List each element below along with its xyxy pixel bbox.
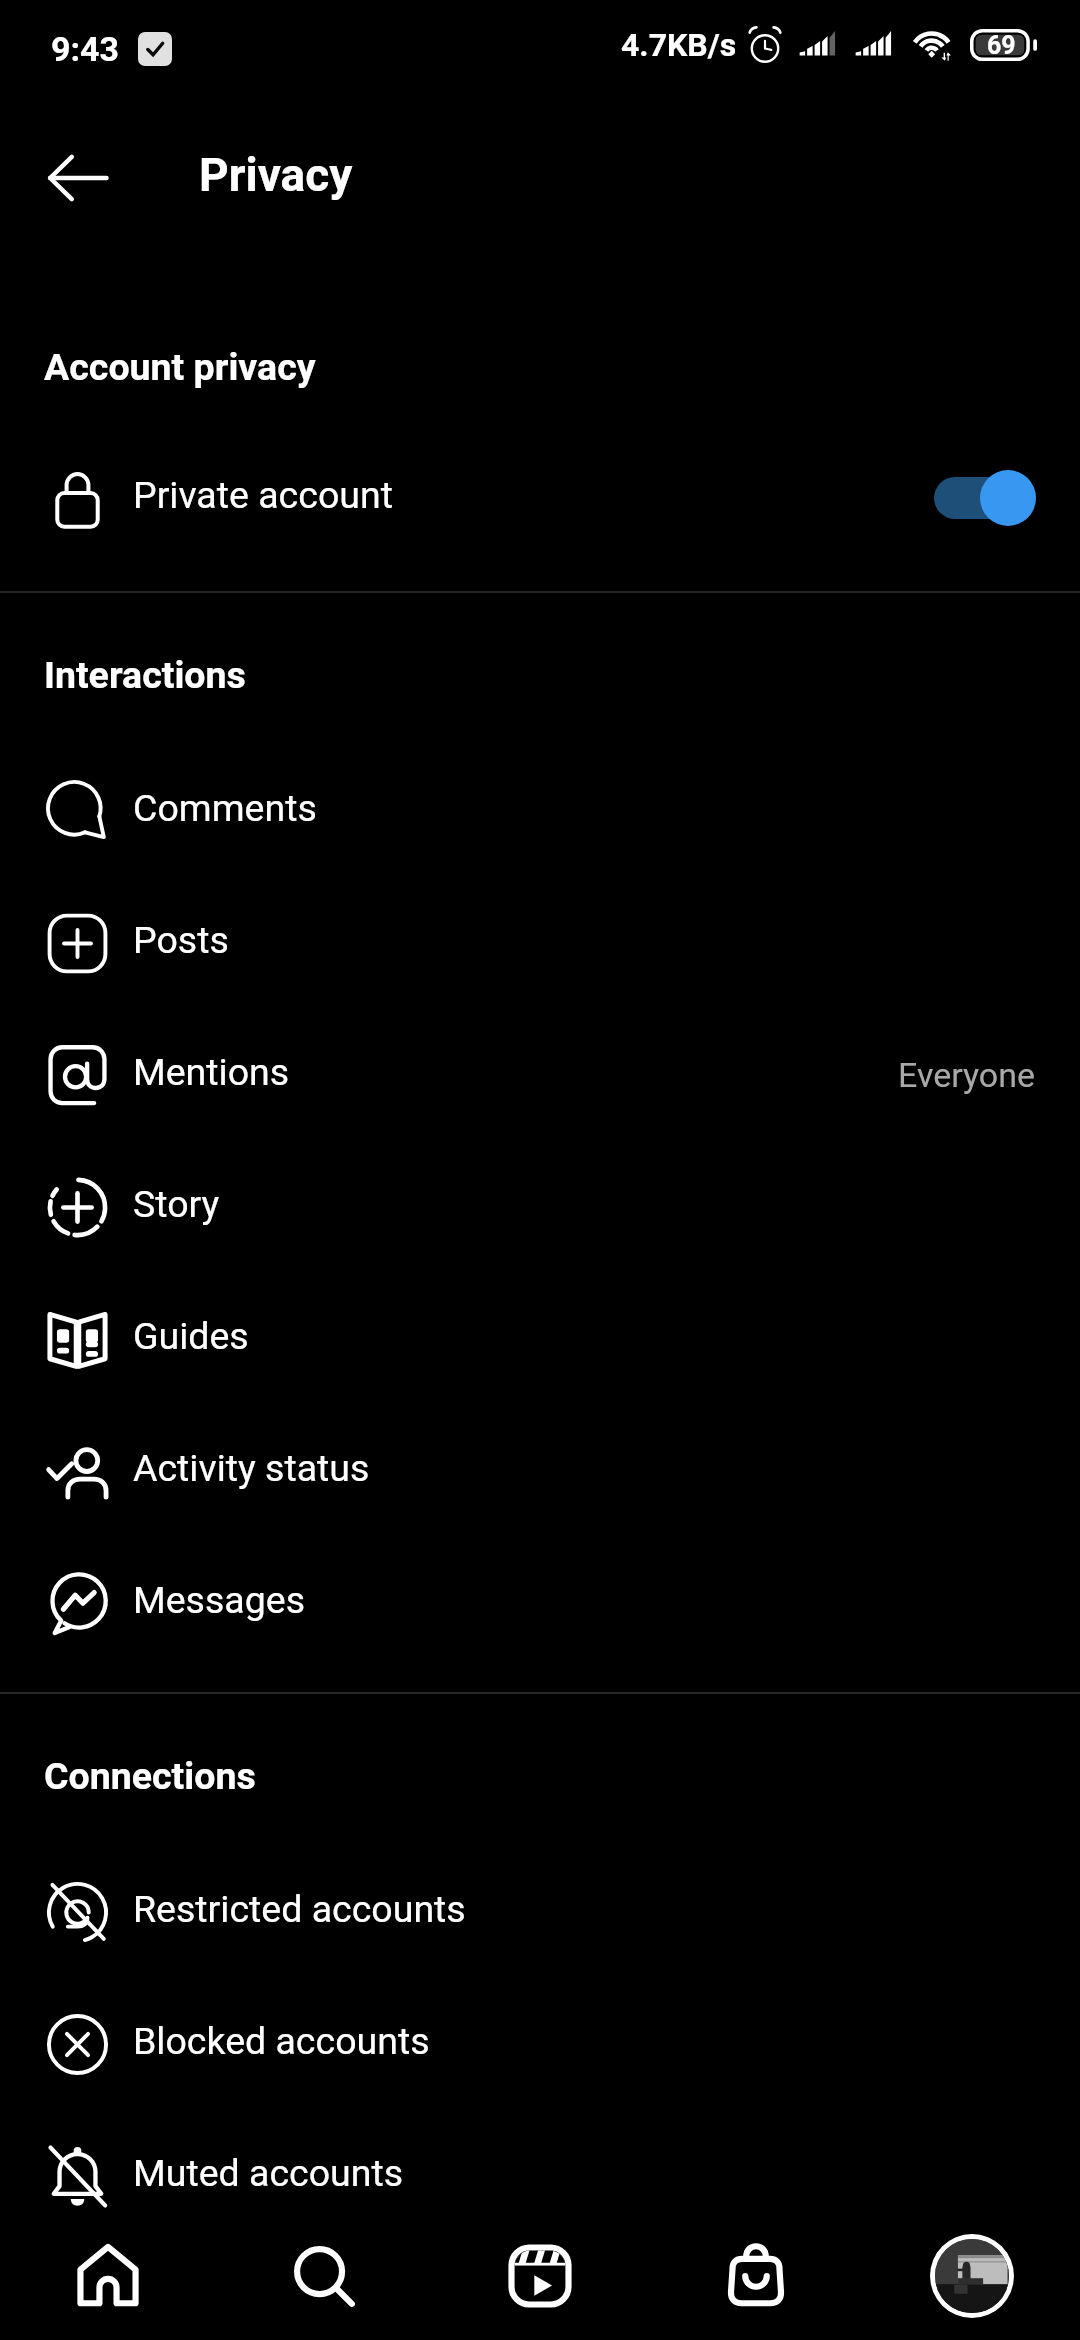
staticText: Blocked accounts [133, 2019, 430, 2063]
staticText: Activity status [133, 1446, 370, 1490]
staticText: Posts [133, 918, 229, 962]
button[interactable]: Blocked accounts [0, 1978, 1080, 2110]
staticText: Restricted accounts [133, 1887, 466, 1931]
button[interactable]: Search [269, 2221, 379, 2331]
button[interactable]: Private account [0, 432, 1080, 564]
button[interactable]: Shop [701, 2221, 811, 2331]
button[interactable]: Profile [917, 2221, 1027, 2331]
staticText: 4.7KB/s [621, 26, 737, 64]
staticText: Guides [133, 1314, 249, 1358]
staticText: 69 [987, 31, 1016, 60]
button[interactable]: Back [26, 126, 130, 230]
staticText: Interactions [44, 653, 246, 697]
button[interactable]: Activity status [0, 1405, 1080, 1537]
staticText: Comments [133, 786, 317, 830]
staticText: Connections [44, 1754, 256, 1798]
staticText: Mentions [133, 1050, 290, 1094]
staticText: Private account [133, 473, 393, 517]
staticText: Account privacy [44, 345, 316, 389]
button[interactable]: Story [0, 1141, 1080, 1273]
staticText: Privacy [199, 148, 353, 202]
staticText: Story [133, 1182, 220, 1226]
button[interactable]: Mentions [0, 1009, 1080, 1141]
staticText: 9:43 [51, 29, 120, 69]
button[interactable]: Muted accounts [0, 2110, 1080, 2242]
staticText: Everyone [898, 1055, 1036, 1095]
button[interactable]: Comments [0, 745, 1080, 877]
button[interactable]: Restricted accounts [0, 1846, 1080, 1978]
staticText: Muted accounts [133, 2151, 404, 2195]
button[interactable]: Posts [0, 877, 1080, 1009]
button[interactable]: Messages [0, 1537, 1080, 1669]
button[interactable]: Guides [0, 1273, 1080, 1405]
button[interactable] [934, 465, 1036, 531]
button[interactable]: Home [53, 2221, 163, 2331]
button[interactable]: Reels [485, 2221, 595, 2331]
staticText: Messages [133, 1578, 306, 1622]
